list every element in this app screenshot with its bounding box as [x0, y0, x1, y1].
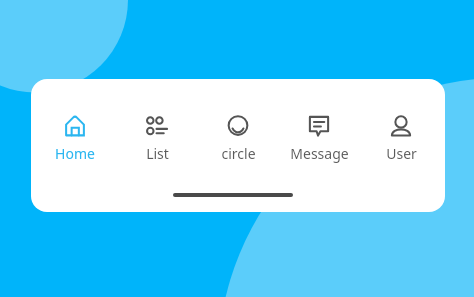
button[interactable]: List: [120, 96, 194, 163]
button[interactable]: Home: [38, 96, 112, 163]
staticText: List: [146, 144, 169, 163]
button[interactable]: Message: [282, 96, 356, 163]
button[interactable]: Circle: [201, 96, 275, 163]
button[interactable]: User: [364, 96, 438, 163]
staticText: circle: [221, 144, 256, 163]
staticText: User: [386, 144, 417, 163]
staticText: Message: [290, 144, 349, 163]
staticText: Home: [55, 144, 95, 163]
